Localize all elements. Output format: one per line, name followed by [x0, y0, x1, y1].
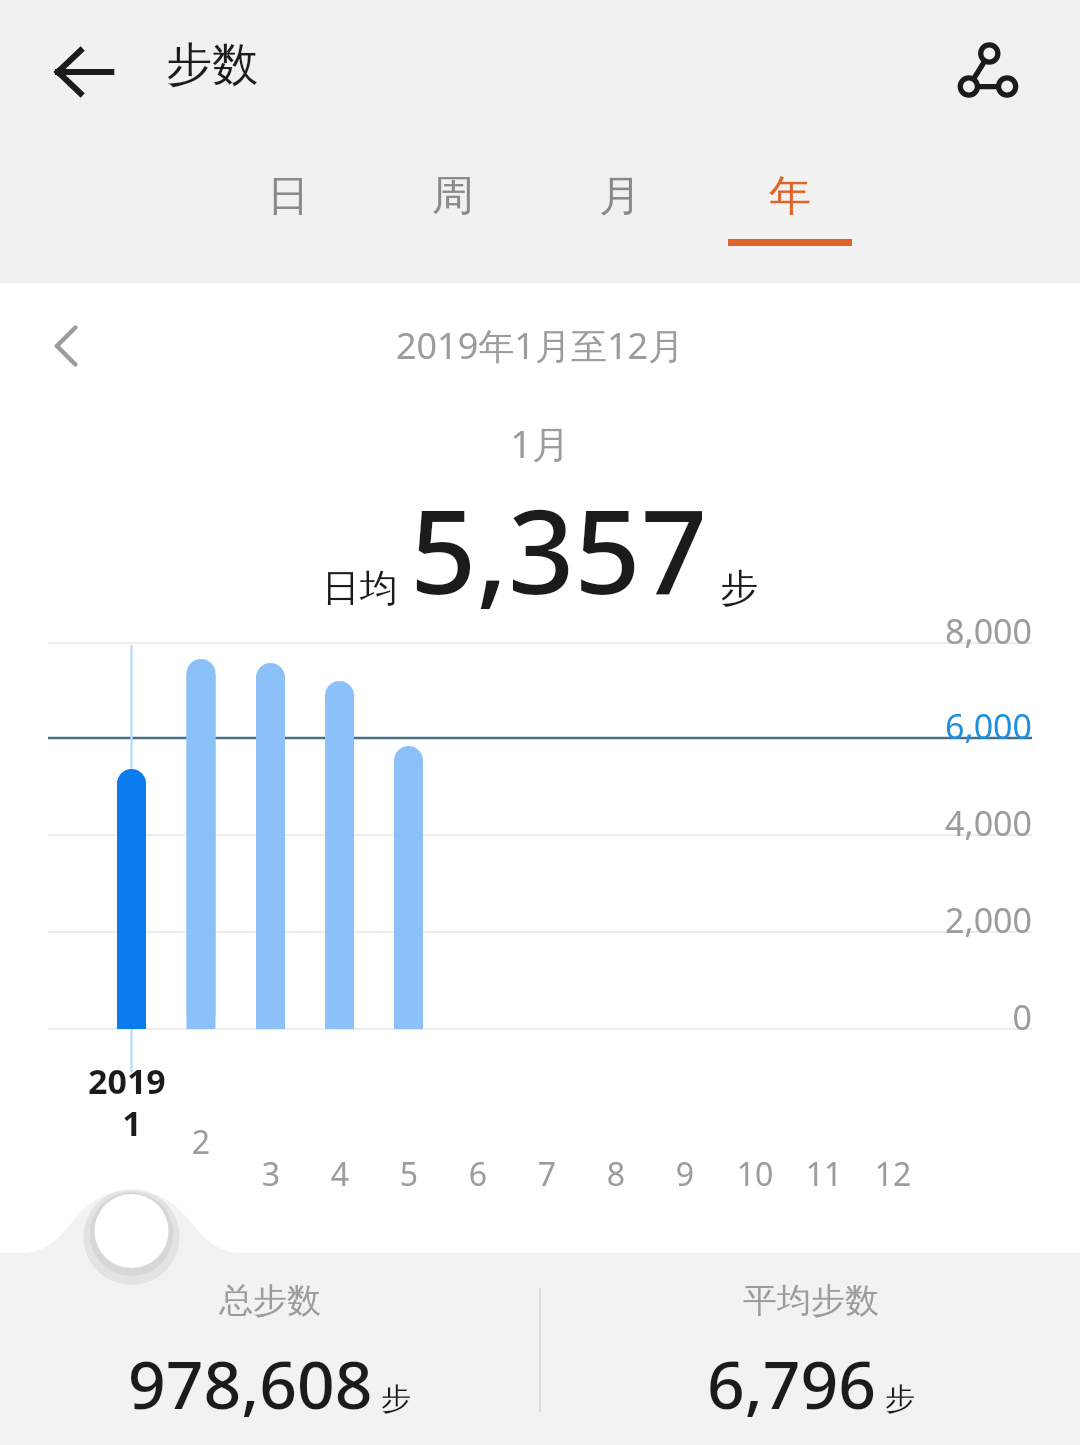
staticText: 8,000	[0, 608, 1032, 654]
button[interactable]: 年	[728, 168, 852, 280]
staticText: 周	[432, 170, 474, 223]
staticText: 日均	[322, 564, 398, 612]
button[interactable]: 日	[226, 168, 350, 280]
staticText: 4,000	[0, 800, 1032, 846]
staticText: 2019	[88, 1058, 166, 1104]
staticText: 1	[100, 1100, 164, 1146]
staticText: 2,000	[0, 897, 1032, 943]
staticText: 步数	[166, 36, 258, 94]
staticText: 平均步数	[743, 1279, 879, 1322]
staticText: 步	[885, 1380, 915, 1418]
staticText: 步	[720, 564, 758, 612]
staticText: 5,357	[410, 470, 708, 628]
staticText: 978,608	[128, 1338, 373, 1428]
staticText: 10	[723, 1152, 787, 1196]
staticText: 6	[446, 1152, 510, 1196]
staticText: 0	[0, 994, 1032, 1040]
staticText: 6,796	[707, 1338, 877, 1428]
staticText: 月	[599, 170, 641, 223]
staticText: 日	[267, 170, 309, 223]
button[interactable]: Back	[34, 22, 134, 122]
staticText: 年	[769, 170, 811, 223]
staticText: 8	[584, 1152, 648, 1196]
staticText: 2019年1月至12月	[0, 321, 1080, 370]
button[interactable]: 周	[391, 168, 515, 280]
staticText: 2	[169, 1120, 233, 1164]
staticText: 11	[792, 1152, 856, 1196]
staticText: 4	[308, 1152, 372, 1196]
button[interactable]: 总步数	[0, 1255, 539, 1428]
staticText: 1月	[0, 417, 1080, 469]
button[interactable]: 月	[558, 168, 682, 280]
staticText: 12	[861, 1152, 925, 1196]
staticText: 9	[653, 1152, 717, 1196]
staticText: 6,000	[0, 703, 1032, 749]
staticText: 总步数	[219, 1279, 321, 1322]
button[interactable]: Previous year	[24, 303, 110, 389]
button[interactable]: 平均步数	[541, 1255, 1080, 1428]
staticText: 3	[239, 1152, 303, 1196]
staticText: 7	[515, 1152, 579, 1196]
button[interactable]: Share	[930, 16, 1042, 128]
staticText: 步	[381, 1380, 411, 1418]
staticText: 5	[377, 1152, 441, 1196]
